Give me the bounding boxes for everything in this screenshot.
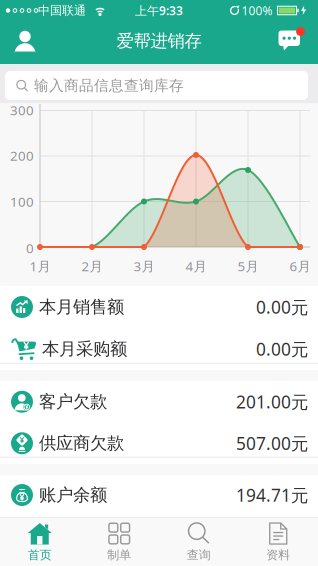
staticText: 200 — [10, 147, 34, 164]
staticText: 客户欠款 — [39, 391, 107, 412]
staticText: 300 — [10, 101, 34, 119]
staticText: 0 — [26, 239, 34, 257]
staticText: 194.71元 — [236, 483, 308, 506]
button[interactable]: 查询 — [159, 518, 238, 566]
button[interactable]: 消息 — [278, 29, 305, 51]
button[interactable]: 本月销售额 — [0, 286, 318, 328]
staticText: 100 — [10, 193, 34, 210]
staticText: 2月 — [81, 257, 102, 275]
staticText: 上午9:33 — [135, 2, 183, 18]
staticText: 账户余额 — [39, 484, 107, 506]
staticText: 爱帮进销存 — [116, 30, 201, 52]
button[interactable]: 个人中心 — [14, 30, 36, 51]
staticText: 1月 — [29, 257, 50, 275]
staticText: 6月 — [289, 257, 310, 275]
staticText: 507.00元 — [236, 432, 308, 455]
staticText: 0.00元 — [256, 337, 308, 360]
button[interactable]: 本月采购额 — [0, 328, 318, 370]
staticText: 0.00元 — [256, 295, 308, 318]
button[interactable]: 客户欠款 — [0, 381, 318, 422]
button[interactable]: 供应商欠款 — [0, 422, 318, 464]
staticText: 5月 — [237, 257, 258, 275]
button[interactable]: 输入商品信息查询库存 — [5, 71, 308, 100]
staticText: 首页 — [28, 547, 52, 562]
staticText: 资料 — [266, 547, 290, 562]
staticText: 100% — [241, 2, 272, 18]
staticText: 3月 — [133, 257, 154, 275]
staticText: 输入商品信息查询库存 — [34, 76, 184, 94]
staticText: 中国联通 — [38, 3, 86, 18]
staticText: 制单 — [107, 547, 131, 562]
staticText: 本月采购额 — [42, 338, 127, 360]
staticText: 本月销售额 — [39, 296, 124, 318]
button[interactable]: 资料 — [238, 518, 318, 566]
staticText: 201.00元 — [236, 390, 308, 413]
staticText: 供应商欠款 — [39, 433, 124, 454]
button[interactable]: 首页 — [0, 518, 79, 566]
staticText: 4月 — [185, 257, 206, 275]
button[interactable]: 制单 — [79, 518, 159, 566]
staticText: 查询 — [187, 547, 211, 562]
button[interactable]: 账户余额 — [0, 475, 318, 515]
